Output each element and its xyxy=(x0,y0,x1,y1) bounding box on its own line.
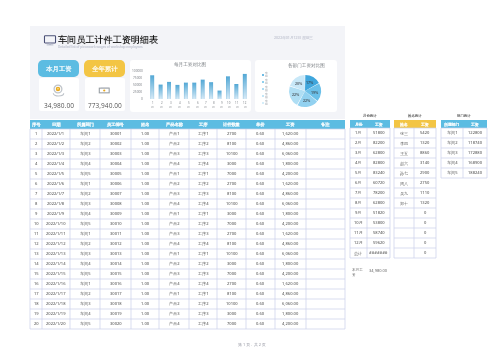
staticText: 0.60 xyxy=(256,231,265,237)
staticText: 9月 xyxy=(355,210,362,216)
staticText: 0.60 xyxy=(256,141,265,147)
staticText: 2022/1/19 xyxy=(46,311,66,317)
staticText: 工资 xyxy=(286,122,295,127)
staticText: 产品1 xyxy=(169,251,180,257)
staticText: 188240 xyxy=(468,170,483,176)
staticText: 2022/1/18 xyxy=(46,301,66,307)
staticText: 车间1 xyxy=(80,281,91,287)
staticText: 3000 xyxy=(227,261,237,267)
staticText: 30003 xyxy=(110,151,122,157)
staticText: 0.60 xyxy=(256,301,265,307)
staticText: 工资 xyxy=(375,122,383,127)
staticText: 产品3 xyxy=(169,271,180,277)
staticText: 19 xyxy=(34,311,39,317)
staticText: 王五 xyxy=(400,151,409,156)
staticText: 8 xyxy=(35,201,38,207)
staticText: 2022/1/4 xyxy=(47,161,65,167)
staticText: 车间4 xyxy=(80,311,91,317)
staticText: 月 xyxy=(244,105,247,109)
staticText: 78200 xyxy=(373,190,385,196)
staticText: 0.60 xyxy=(256,241,265,247)
staticText: 30014 xyxy=(110,261,122,267)
staticText: 产品2 xyxy=(169,221,180,227)
staticText: 7000 xyxy=(227,271,237,277)
button[interactable]: 本月工资 xyxy=(38,60,79,111)
staticText: 1,620.00 xyxy=(282,181,299,187)
staticText: 0.60 xyxy=(256,161,265,167)
staticText: 车间2 xyxy=(80,241,91,247)
staticText: 2022/1/16 xyxy=(46,281,66,287)
staticText: 1.00 xyxy=(141,141,150,147)
staticText: 168900 xyxy=(468,160,483,166)
staticText: 1.00 xyxy=(141,131,150,137)
staticText: 产品2 xyxy=(169,141,180,147)
staticText: 工序1 xyxy=(198,171,209,177)
staticText: 车间5 xyxy=(80,321,91,327)
staticText: 工序2 xyxy=(198,301,209,307)
staticText: 4,860.00 xyxy=(282,141,299,147)
staticText: 3000 xyxy=(227,311,237,317)
staticText: 10 xyxy=(227,101,231,105)
staticText: 62800 xyxy=(373,200,385,206)
staticText: 1.00 xyxy=(141,191,150,197)
staticText: 0.60 xyxy=(256,131,265,137)
staticText: 本月工资 xyxy=(46,65,72,73)
staticText: 0 xyxy=(424,250,427,256)
staticText: 1320 xyxy=(420,140,430,146)
staticText: 9 xyxy=(221,101,223,105)
staticText: 10 xyxy=(34,221,39,227)
staticText: 8 xyxy=(213,101,215,105)
staticText: 工序1 xyxy=(198,211,209,217)
staticText: 1.00 xyxy=(141,281,150,287)
staticText: 所属部门 xyxy=(77,122,94,127)
staticText: 工序1 xyxy=(198,291,209,297)
staticText: 30004 xyxy=(110,161,122,167)
staticText: 车间四部 xyxy=(265,92,270,99)
staticText: 8100 xyxy=(227,241,237,247)
button[interactable]: 全年累计 xyxy=(84,60,125,111)
staticText: 10100 xyxy=(226,201,238,207)
staticText: 1.00 xyxy=(141,231,150,237)
staticText: 30010 xyxy=(110,221,122,227)
staticText: 产品4 xyxy=(169,241,180,247)
staticText: 2022/1/8 xyxy=(47,201,65,207)
staticText: 1.00 xyxy=(141,201,150,207)
staticText: 车间3 xyxy=(80,251,91,257)
staticText: 1,620.00 xyxy=(282,131,299,137)
staticText: 0.60 xyxy=(256,271,265,277)
staticText: 83240 xyxy=(373,170,385,176)
staticText: 82800 xyxy=(373,160,385,166)
staticText: 1,620.00 xyxy=(282,281,299,287)
staticText: 7 xyxy=(205,101,207,105)
staticText: 22% xyxy=(303,98,311,103)
staticText: 全年累计 xyxy=(92,65,118,73)
staticText: 1.00 xyxy=(141,161,150,167)
staticText: 车间2 xyxy=(80,141,91,147)
staticText: 10100 xyxy=(226,301,238,307)
staticText: 4,860.00 xyxy=(282,191,299,197)
staticText: 赵六 xyxy=(400,161,409,166)
staticText: 22% xyxy=(292,92,300,97)
staticText: 吴九 xyxy=(400,191,409,196)
staticText: 车间五部 xyxy=(265,99,270,106)
staticText: 2022/1/15 xyxy=(46,271,66,277)
staticText: 1,800.00 xyxy=(282,311,299,317)
staticText: ####### xyxy=(369,250,388,256)
staticText: 部门统计 xyxy=(457,114,471,118)
staticText: 12月 xyxy=(354,240,363,246)
staticText: 车间4 xyxy=(80,261,91,267)
staticText: 车间一部 xyxy=(265,71,270,78)
staticText: 7000 xyxy=(227,321,237,327)
staticText: 1110 xyxy=(420,190,430,196)
staticText: 5420 xyxy=(420,130,430,136)
staticText: 姓名统计 xyxy=(408,114,422,118)
staticText: 2022/1/7 xyxy=(47,191,65,197)
staticText: 1 xyxy=(152,101,154,105)
staticText: 1.00 xyxy=(141,301,150,307)
staticText: 7 xyxy=(35,191,38,197)
staticText: 车间3 xyxy=(80,151,91,157)
staticText: 4月 xyxy=(355,160,362,166)
staticText: 4,200.00 xyxy=(282,171,299,177)
staticText: 月份 xyxy=(355,122,363,127)
staticText: 2022/1/5 xyxy=(47,171,65,177)
